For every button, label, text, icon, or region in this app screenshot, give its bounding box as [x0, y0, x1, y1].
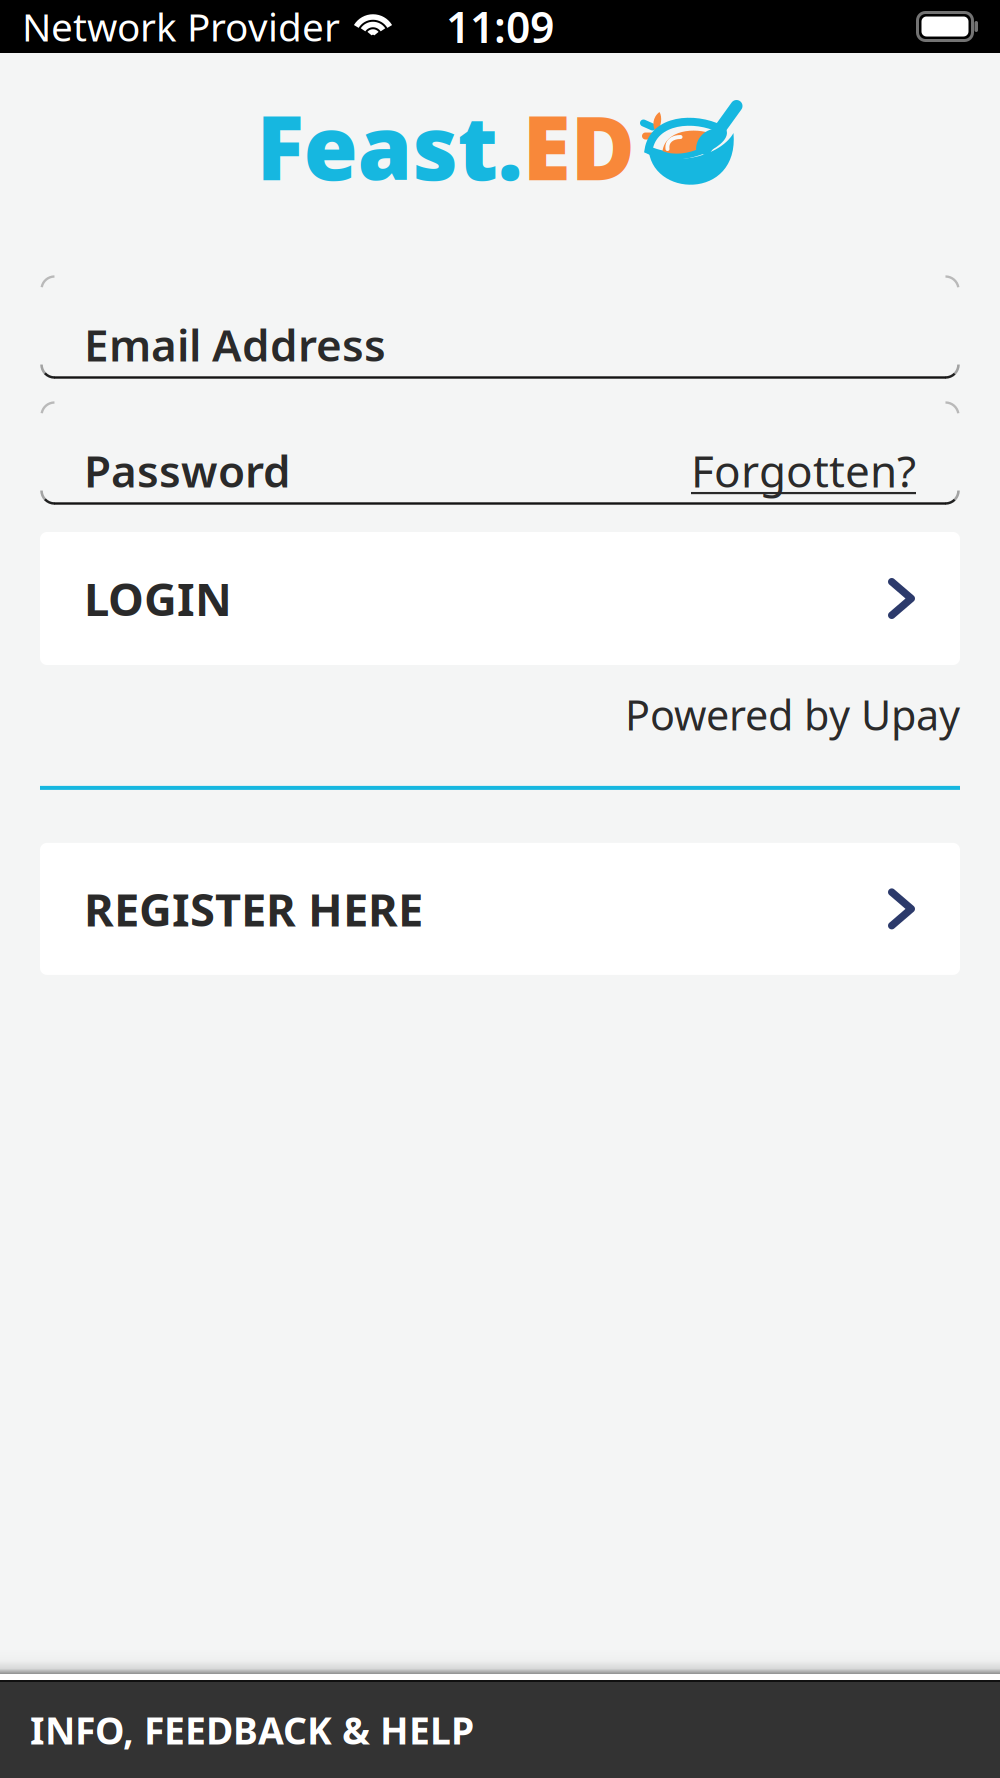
staticText: ED	[522, 88, 635, 204]
staticText: REGISTER HERE	[84, 879, 423, 939]
staticText: LOGIN	[84, 568, 232, 629]
staticText: INFO, FEEDBACK & HELP	[30, 1705, 474, 1755]
button[interactable]: INFO, FEEDBACK & HELP	[0, 1682, 1000, 1778]
staticText: 11:09	[446, 0, 554, 55]
button[interactable]: Forgotten?	[691, 441, 916, 500]
staticText: Forgotten?	[691, 441, 916, 500]
staticText: Powered by Upay	[625, 687, 960, 742]
button[interactable]: Email Address	[40, 275, 960, 379]
button[interactable]: LOGIN	[40, 532, 960, 665]
staticText: Password	[84, 441, 291, 500]
button[interactable]: REGISTER HERE	[40, 843, 960, 975]
staticText: Network Provider	[22, 1, 340, 52]
staticText: Feast.	[256, 88, 522, 204]
staticText: Email Address	[84, 315, 386, 374]
